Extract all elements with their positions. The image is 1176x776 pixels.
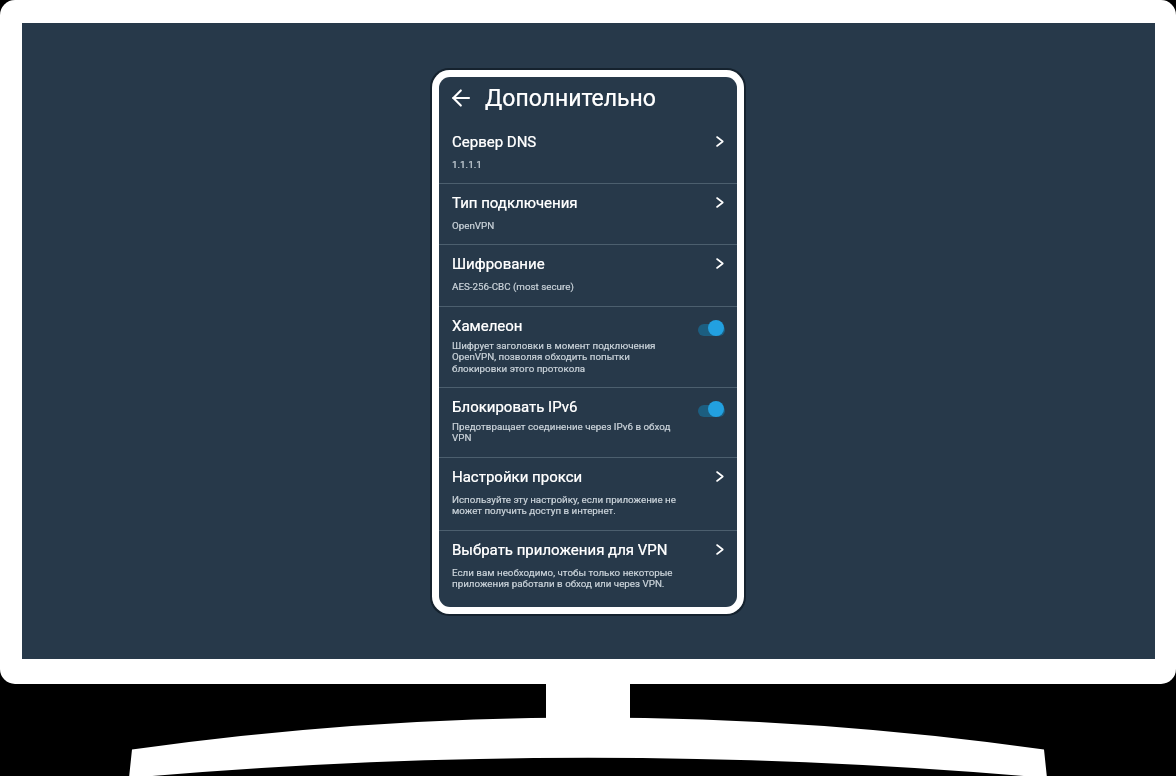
staticText: Дополнительно [485,85,656,112]
staticText: Шифрование [452,255,545,273]
staticText: Сервер DNS [452,133,537,151]
staticText: Хамелеон [452,317,523,335]
button[interactable]: Настройки прокси [439,458,737,530]
staticText: Тип подключения [452,194,578,212]
staticText: Если вам необходимо, чтобы только некото… [452,567,673,589]
staticText: 1.1.1.1 [452,159,482,170]
staticText: OpenVPN [452,220,495,231]
staticText: Предотвращает соединение через IPv6 в об… [452,421,671,443]
staticText: AES-256-CBC (most secure) [452,281,574,292]
button[interactable]: Back [449,86,473,110]
button[interactable]: Toggle [698,318,725,335]
staticText: Настройки прокси [452,468,583,486]
button[interactable]: Сервер DNS [439,123,737,183]
button[interactable]: Шифрование [439,245,737,306]
staticText: Используйте эту настройку, если приложен… [452,494,676,516]
button[interactable]: Тип подключения [439,184,737,244]
staticText: Блокировать IPv6 [452,398,578,416]
button[interactable]: Toggle [698,399,725,416]
staticText: Шифрует заголовки в момент подключения O… [452,340,656,374]
staticText: Выбрать приложения для VPN [452,541,668,559]
button[interactable]: Выбрать приложения для VPN [439,531,737,606]
